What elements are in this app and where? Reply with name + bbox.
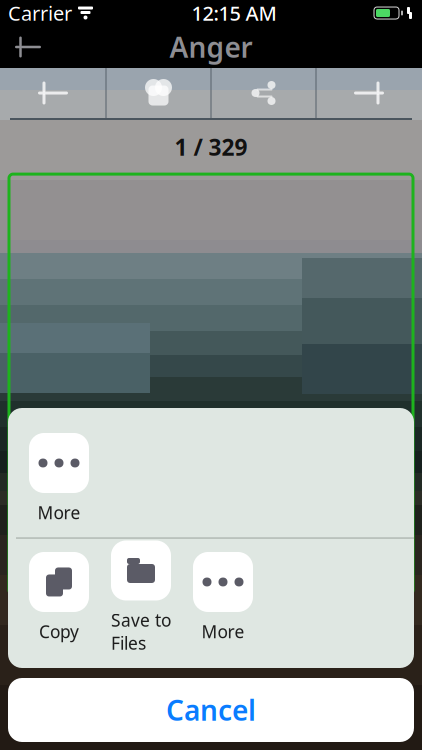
staticText: Copy — [39, 620, 79, 643]
button[interactable]: Next — [316, 68, 421, 118]
button[interactable]: Cancel — [8, 678, 414, 742]
staticText: Cancel — [166, 691, 256, 729]
button[interactable]: Share — [211, 68, 315, 118]
button[interactable]: Copy — [18, 548, 100, 647]
button[interactable]: More — [18, 429, 100, 528]
button[interactable]: Save to Files — [100, 536, 182, 658]
staticText: Anger — [169, 28, 252, 66]
staticText: Save to Files — [111, 608, 171, 654]
staticText: More — [37, 501, 80, 524]
button[interactable]: Previous — [0, 68, 105, 118]
staticText: Carrier — [8, 0, 72, 26]
button[interactable]: Favorite — [106, 68, 210, 118]
staticText: 12:15 AM — [191, 0, 276, 26]
button[interactable]: More — [182, 548, 264, 647]
staticText: More — [201, 620, 244, 643]
staticText: 1 / 329 — [174, 132, 247, 162]
button[interactable]: Back — [0, 26, 56, 68]
